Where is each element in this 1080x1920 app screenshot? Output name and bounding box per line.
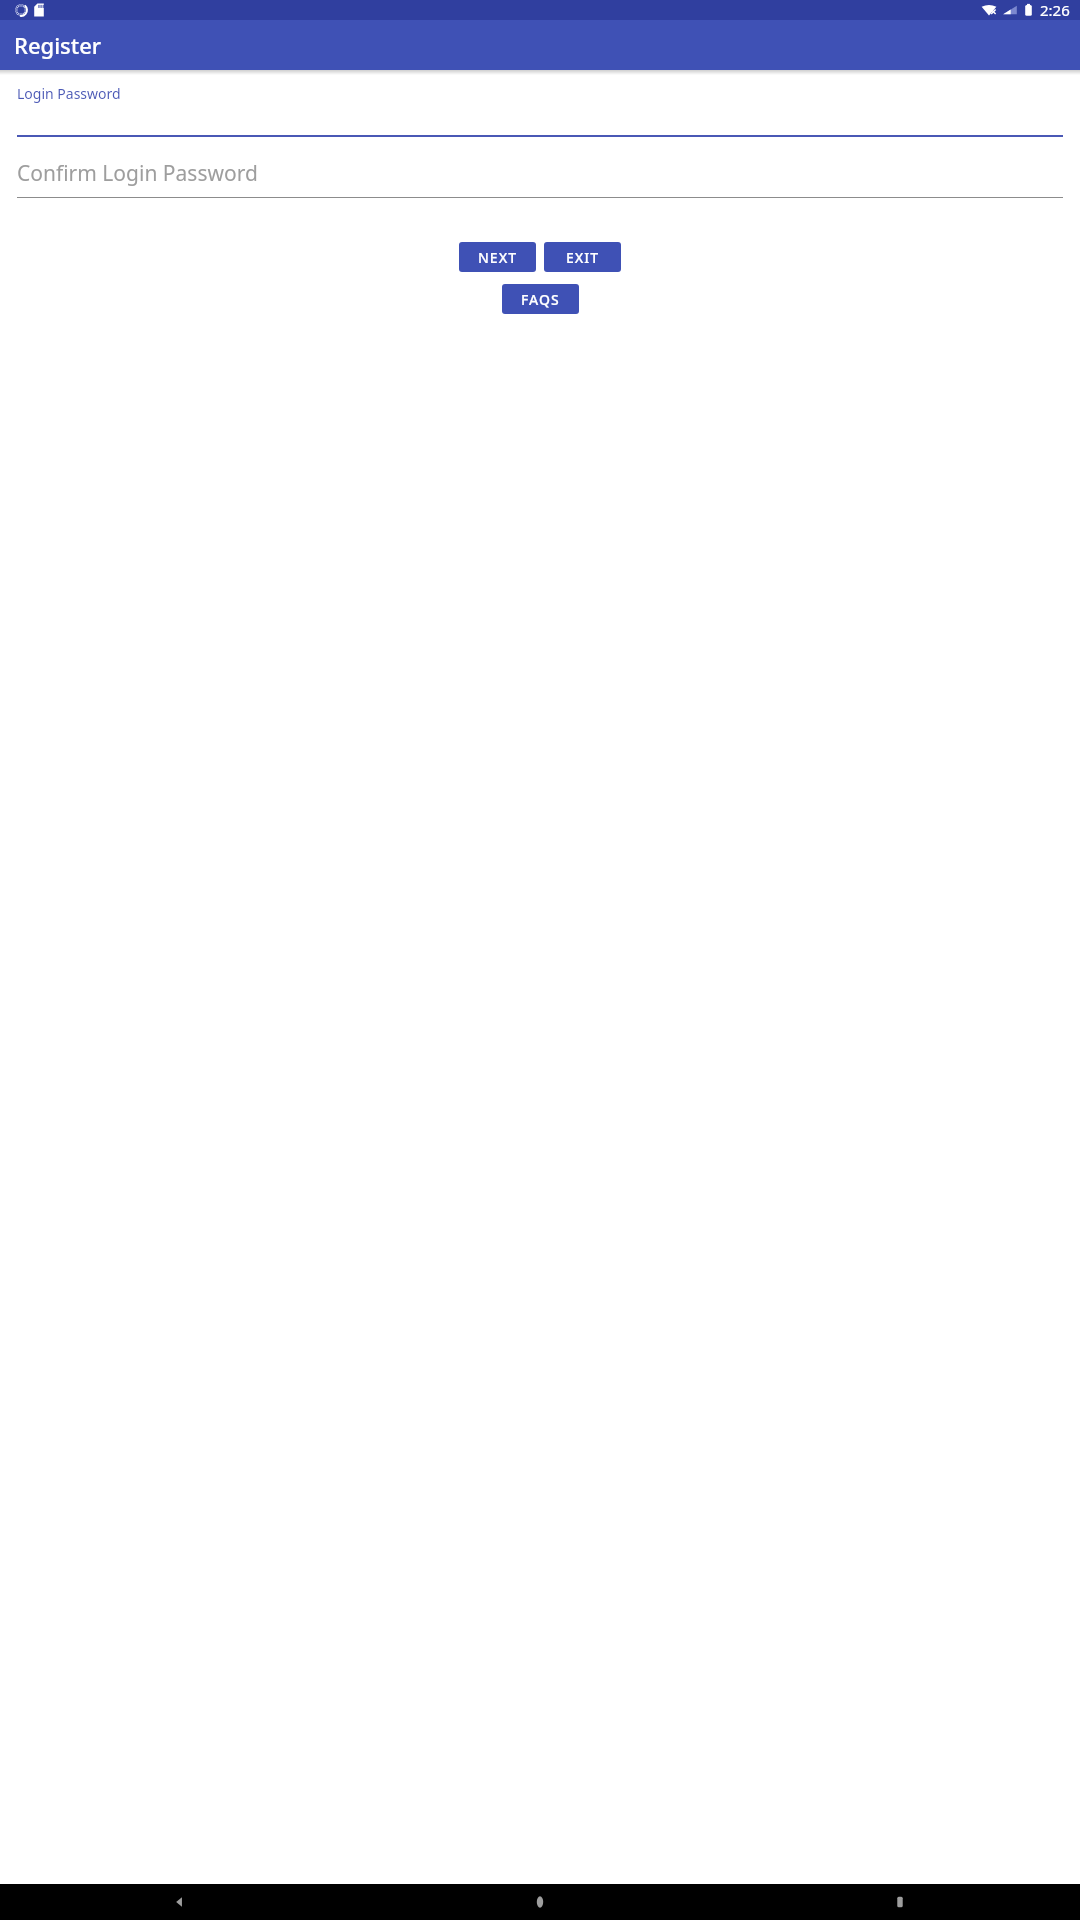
button[interactable]: Login Password [17,84,1063,137]
button[interactable]: NEXT [459,242,536,272]
staticText: Register [14,30,102,60]
staticText: FAQS [521,290,560,309]
button[interactable]: Recent apps [720,1884,1080,1920]
staticText: EXIT [566,248,600,267]
button[interactable]: Back [0,1884,360,1920]
staticText: Confirm Login Password [17,159,258,188]
staticText: NEXT [478,248,518,267]
button[interactable]: Home [360,1884,720,1920]
staticText: 2:26 [1040,0,1070,20]
button[interactable]: Confirm Login Password [17,159,1063,198]
button[interactable]: FAQS [502,284,579,314]
button[interactable]: EXIT [544,242,621,272]
staticText: Login Password [17,84,121,103]
